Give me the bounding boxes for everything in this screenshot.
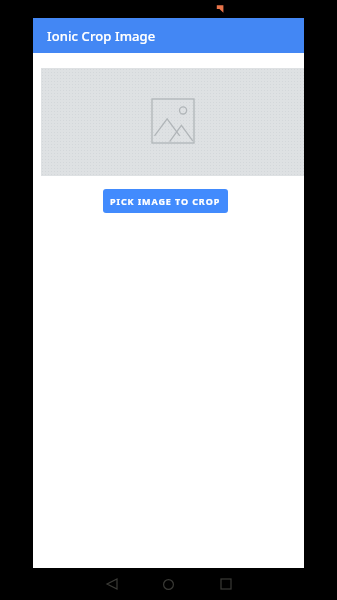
staticText: PICK IMAGE TO CROP — [110, 195, 221, 207]
staticText: Ionic Crop Image — [47, 27, 156, 45]
button[interactable]: Home — [154, 570, 182, 598]
button[interactable]: PICK IMAGE TO CROP — [103, 189, 228, 213]
button[interactable]: Recent apps — [212, 570, 240, 598]
button[interactable]: Back — [98, 570, 126, 598]
